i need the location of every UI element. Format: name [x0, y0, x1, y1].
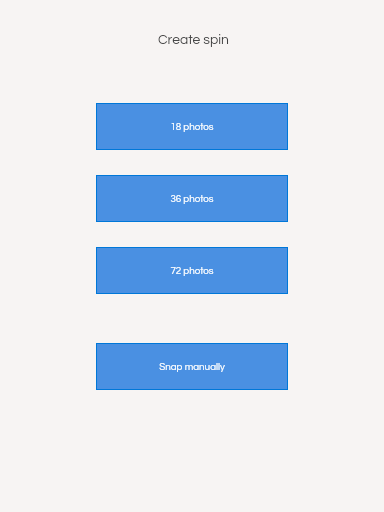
staticText: Snap manually [159, 362, 225, 372]
staticText: 18 photos [170, 122, 214, 132]
staticText: 36 photos [170, 194, 214, 204]
button[interactable]: 18 photos [96, 103, 288, 150]
button[interactable]: Snap manually [96, 343, 288, 390]
staticText: 72 photos [170, 266, 214, 276]
staticText: Create spin [158, 33, 229, 47]
button[interactable]: 36 photos [96, 175, 288, 222]
button[interactable]: 72 photos [96, 247, 288, 294]
